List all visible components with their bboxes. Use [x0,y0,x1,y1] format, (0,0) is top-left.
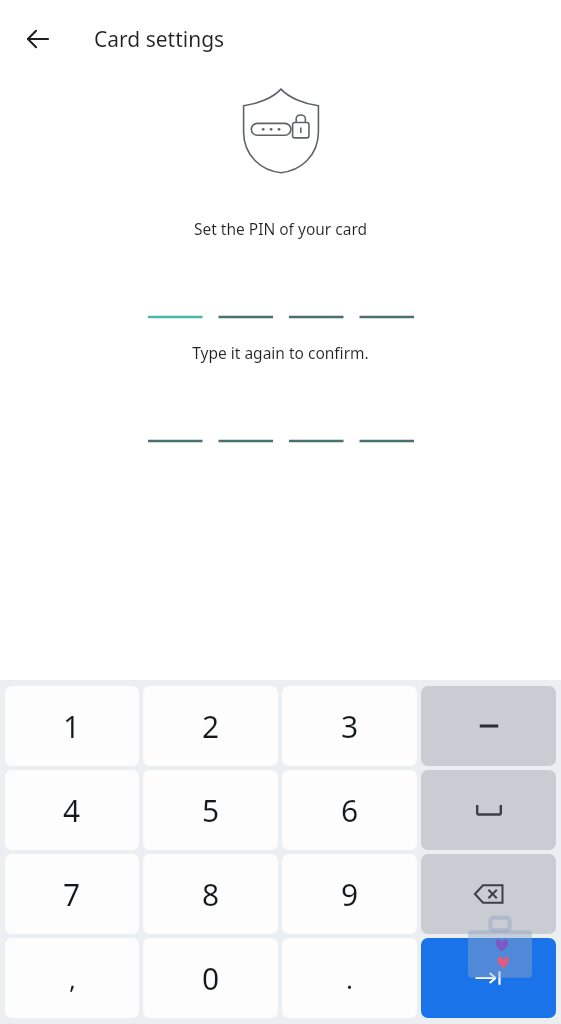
button[interactable]: 8 [143,854,278,934]
staticText: Set the PIN of your card [0,218,561,239]
button[interactable]: Backspace [421,854,556,934]
staticText: 0 [202,958,220,999]
staticText: 9 [341,874,359,915]
button[interactable]: 6 [282,770,417,850]
button[interactable]: 3 [282,686,417,766]
button[interactable]: 2 [143,686,278,766]
button[interactable]: 4 [5,770,139,850]
staticText: 8 [202,874,220,915]
staticText: 3 [341,706,359,747]
button[interactable]: , [5,938,139,1018]
button[interactable]: . [282,938,417,1018]
staticText: 7 [63,874,81,915]
staticText: 2 [202,706,220,747]
button[interactable]: 1 [5,686,139,766]
button[interactable]: 9 [282,854,417,934]
button[interactable]: Enter [421,938,556,1018]
staticText: 4 [63,790,81,831]
staticText: 5 [202,790,220,831]
staticText: 6 [341,790,359,831]
button[interactable]: 5 [143,770,278,850]
button[interactable]: 7 [5,854,139,934]
staticText: 1 [63,706,81,747]
staticText: , [69,961,76,996]
button[interactable]: Minus [421,686,556,766]
button[interactable]: Space [421,770,556,850]
staticText: . [346,961,353,996]
staticText: Type it again to confirm. [0,342,561,363]
button[interactable]: Back [12,13,64,65]
button[interactable]: 0 [143,938,278,1018]
staticText: Card settings [94,25,225,54]
